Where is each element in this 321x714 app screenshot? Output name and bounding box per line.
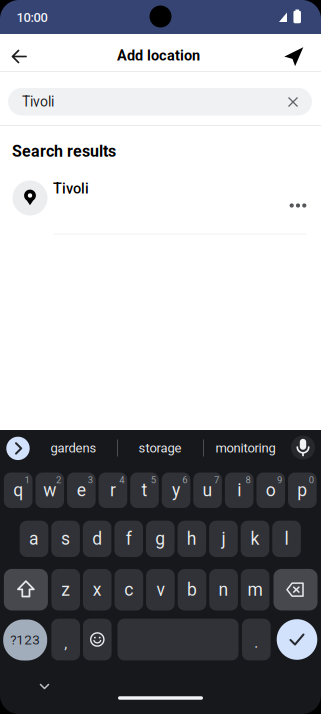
button[interactable]: a (20, 521, 48, 557)
staticText: k (250, 529, 259, 549)
staticText: 10:00 (16, 10, 47, 25)
button[interactable]: t (130, 472, 159, 508)
staticText: 6 (182, 474, 187, 485)
staticText: e (77, 480, 86, 500)
button[interactable]: o (256, 472, 285, 508)
staticText: 1 (24, 474, 29, 485)
button[interactable]: d (83, 521, 111, 557)
button[interactable]: g (146, 521, 175, 557)
button[interactable]: k (241, 521, 269, 557)
button[interactable]: w (35, 472, 64, 508)
button[interactable]: Hide keyboard (29, 671, 59, 701)
button[interactable]: storage (120, 431, 200, 465)
button[interactable]: More options (283, 190, 313, 220)
button[interactable]: Done (276, 618, 318, 660)
button[interactable]: i (225, 472, 253, 508)
button[interactable]: s (51, 521, 80, 557)
button[interactable]: v (146, 569, 175, 610)
staticText: z (61, 579, 70, 600)
staticText: q (13, 480, 23, 500)
button[interactable]: z (51, 569, 80, 610)
staticText: i (237, 480, 241, 500)
staticText: t (141, 480, 147, 500)
staticText: gardens (50, 440, 96, 456)
staticText: h (187, 529, 197, 549)
staticText: 0 (309, 474, 314, 485)
staticText: a (29, 529, 39, 549)
staticText: v (156, 579, 164, 600)
staticText: storage (138, 440, 181, 456)
button[interactable]: f (114, 521, 143, 557)
button[interactable]: Use current location (275, 36, 315, 76)
button[interactable]: Clear search (278, 87, 308, 117)
staticText: g (155, 529, 165, 549)
button[interactable]: x (83, 569, 112, 610)
staticText: Tivoli (53, 180, 89, 197)
staticText: x (93, 579, 102, 600)
staticText: Add location (117, 47, 200, 64)
button[interactable]: monitoring (207, 431, 283, 465)
button[interactable]: u (193, 472, 222, 508)
staticText: 7 (214, 474, 219, 485)
staticText: w (43, 480, 56, 500)
staticText: j (221, 529, 225, 549)
staticText: 3 (88, 474, 93, 485)
staticText: Tivoli (22, 93, 54, 110)
staticText: m (248, 579, 263, 600)
staticText: 2 (56, 474, 61, 485)
button[interactable]: ?123 (3, 619, 47, 660)
button[interactable]: n (209, 569, 238, 610)
staticText: . (254, 634, 258, 651)
button[interactable]: Expand toolbar (3, 433, 33, 463)
staticText: 9 (277, 474, 282, 485)
button[interactable]: c (114, 569, 143, 610)
button[interactable]: e (67, 472, 96, 508)
button[interactable]: Back (0, 36, 39, 76)
staticText: l (285, 529, 289, 549)
staticText: 8 (245, 474, 250, 485)
button[interactable]: m (241, 569, 269, 610)
button[interactable]: . (242, 619, 271, 660)
button[interactable]: h (177, 521, 206, 557)
staticText: Search results (12, 142, 116, 161)
button[interactable]: l (272, 521, 301, 557)
button[interactable]: b (178, 569, 206, 610)
staticText: ?123 (10, 632, 40, 648)
staticText: , (64, 635, 67, 652)
button[interactable]: p (288, 472, 317, 508)
staticText: f (126, 529, 132, 549)
button[interactable]: Voice input (288, 432, 318, 462)
staticText: 4 (119, 474, 124, 485)
button[interactable]: Shift (4, 569, 48, 610)
staticText: s (61, 529, 70, 549)
button[interactable]: j (209, 521, 238, 557)
staticText: p (297, 480, 307, 500)
staticText: n (219, 579, 229, 600)
staticText: d (92, 529, 102, 549)
staticText: monitoring (215, 440, 275, 456)
button[interactable]: Delete (273, 569, 317, 610)
button[interactable]: y (162, 472, 190, 508)
button[interactable]: gardens (33, 431, 113, 465)
staticText: r (110, 480, 116, 500)
button[interactable]: Tivoli (12, 179, 282, 235)
staticText: y (172, 480, 180, 500)
staticText: c (124, 579, 133, 600)
button[interactable]: , (51, 619, 80, 660)
staticText: u (203, 480, 213, 500)
button[interactable]: Emoji (83, 619, 112, 660)
button[interactable]: q (4, 472, 32, 508)
staticText: 5 (151, 474, 156, 485)
button[interactable]: r (99, 472, 127, 508)
staticText: b (187, 579, 197, 600)
staticText: o (266, 480, 276, 500)
